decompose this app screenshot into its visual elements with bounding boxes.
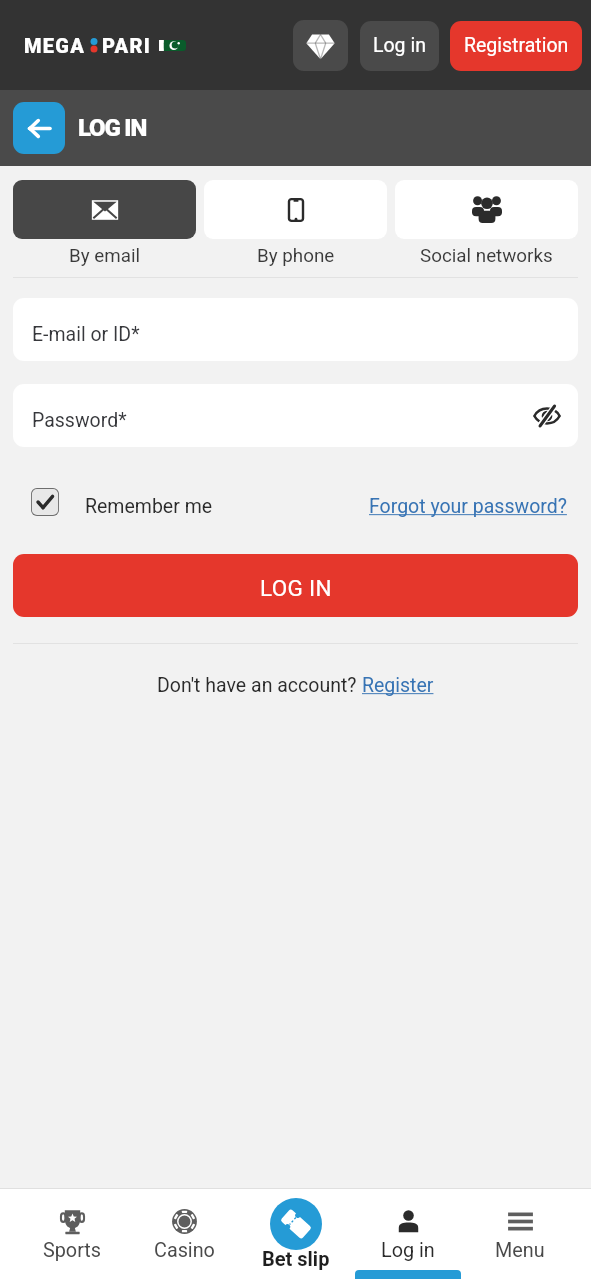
button[interactable]: LOG IN — [13, 554, 578, 617]
button[interactable]: Sports — [16, 1189, 128, 1270]
button[interactable]: Bonuses — [293, 20, 348, 71]
button[interactable]: Menu — [464, 1189, 576, 1270]
button[interactable] — [395, 180, 578, 239]
button[interactable]: Log in — [360, 21, 439, 71]
staticText: Log in — [381, 1239, 435, 1262]
staticText: Log in — [373, 34, 426, 57]
staticText: Registration — [464, 34, 569, 57]
staticText: Remember me — [85, 495, 213, 518]
button[interactable] — [13, 180, 196, 239]
staticText: LOG IN — [78, 114, 147, 142]
staticText: Don't have an account? — [157, 674, 362, 697]
button[interactable] — [204, 180, 387, 239]
staticText: PARI — [102, 34, 152, 57]
staticText: E-mail or ID* — [32, 323, 140, 346]
staticText: By phone — [257, 245, 335, 267]
button[interactable]: Forgot your password? — [369, 491, 567, 514]
staticText: Menu — [495, 1239, 545, 1262]
staticText: Social networks — [420, 245, 553, 267]
button[interactable]: Show password — [527, 396, 567, 436]
button[interactable]: E-mail or ID* — [13, 298, 578, 361]
staticText: Bet slip — [262, 1247, 330, 1270]
staticText: LOG IN — [260, 575, 332, 601]
button[interactable]: Casino — [128, 1189, 240, 1270]
staticText: MEGA — [24, 34, 86, 57]
staticText: Casino — [154, 1239, 215, 1262]
button[interactable]: Log in — [352, 1189, 464, 1279]
button[interactable]: Back — [13, 102, 65, 154]
button[interactable]: Registration — [450, 21, 582, 71]
button[interactable]: Register — [362, 674, 434, 697]
staticText: By email — [69, 245, 141, 267]
button[interactable]: Bet slip — [240, 1189, 352, 1273]
button[interactable]: Password* — [13, 384, 578, 447]
button[interactable]: Remember me — [13, 488, 219, 516]
staticText: Sports — [43, 1239, 102, 1262]
staticText: Password* — [32, 409, 127, 432]
